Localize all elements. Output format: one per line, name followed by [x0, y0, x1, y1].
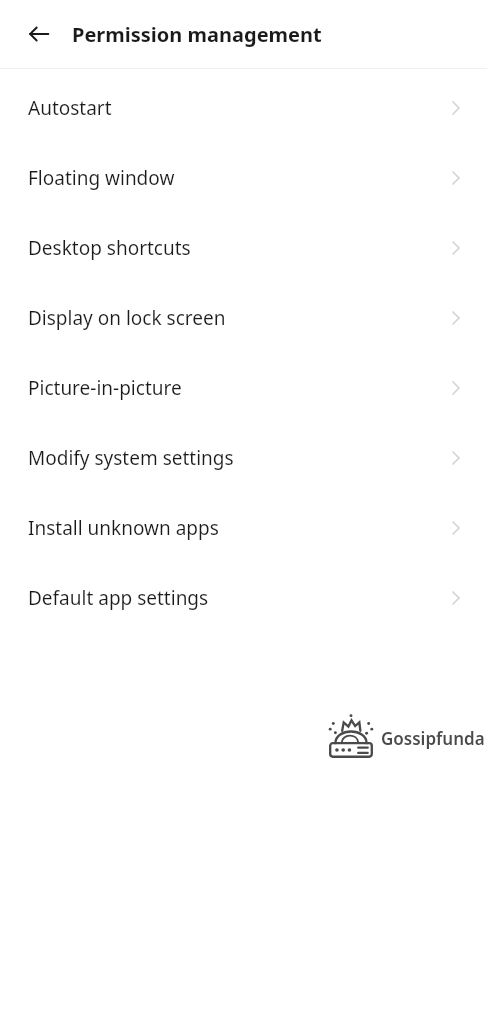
staticText: Default app settings	[28, 585, 209, 611]
staticText: Install unknown apps	[28, 515, 219, 541]
staticText: Modify system settings	[28, 445, 234, 471]
staticText: Desktop shortcuts	[28, 235, 191, 261]
button[interactable]: Display on lock screen	[0, 283, 487, 353]
button[interactable]: Desktop shortcuts	[0, 213, 487, 283]
button[interactable]: Floating window	[0, 143, 487, 213]
button[interactable]: Back	[22, 17, 56, 51]
staticText: Display on lock screen	[28, 305, 226, 331]
button[interactable]: Picture-in-picture	[0, 353, 487, 423]
staticText: Gossipfunda	[381, 727, 485, 750]
staticText: Autostart	[28, 95, 112, 121]
button[interactable]: Autostart	[0, 73, 487, 143]
staticText: Picture-in-picture	[28, 375, 182, 401]
staticText: Permission management	[72, 21, 322, 48]
button[interactable]: Modify system settings	[0, 423, 487, 493]
button[interactable]: Install unknown apps	[0, 493, 487, 563]
staticText: Floating window	[28, 165, 175, 191]
button[interactable]: Default app settings	[0, 563, 487, 633]
